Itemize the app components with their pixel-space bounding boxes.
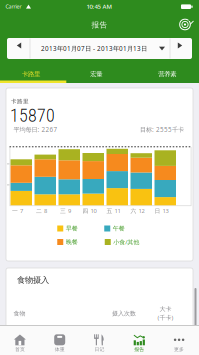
- staticText: 体重: [55, 346, 65, 352]
- staticText: 卡路里: [22, 70, 40, 78]
- staticText: 宏量: [90, 70, 102, 78]
- staticText: 六 12: [130, 207, 144, 215]
- staticText: 卡路里: [11, 98, 29, 105]
- button[interactable]: 报告: [119, 325, 159, 355]
- button[interactable]: 体重: [40, 325, 80, 355]
- staticText: 早餐: [66, 225, 78, 232]
- staticText: 二 8: [36, 207, 47, 215]
- staticText: 15870: [10, 105, 55, 126]
- staticText: 更多: [174, 346, 184, 352]
- staticText: 10:45 AM: [86, 2, 112, 11]
- staticText: 四 10: [82, 207, 96, 215]
- staticText: 日 13: [154, 207, 168, 215]
- staticText: 日记: [94, 346, 104, 352]
- staticText: Carrier: [5, 3, 21, 10]
- staticText: 报告: [134, 346, 144, 352]
- button[interactable]: 营养素: [133, 61, 199, 83]
- staticText: 目标: 2555千卡: [140, 125, 184, 134]
- staticText: 摄入次数: [112, 310, 136, 317]
- staticText: 一 7: [12, 207, 23, 215]
- button[interactable]: 上一周: [7, 38, 30, 59]
- button[interactable]: 下一周: [170, 38, 192, 59]
- button[interactable]: 更多: [159, 325, 199, 355]
- button[interactable]: 卡路里: [0, 61, 66, 83]
- staticText: 2013年01月07日 - 2013年01月13日: [41, 44, 147, 53]
- staticText: 平均每日: 2267: [13, 125, 57, 134]
- staticText: 首页: [15, 346, 25, 352]
- staticText: 小食/其他: [113, 238, 139, 246]
- staticText: (千卡): [157, 313, 173, 322]
- staticText: 报告: [91, 20, 107, 30]
- button[interactable]: 2013年01月07日 - 2013年01月13日: [30, 38, 169, 59]
- button[interactable]: 日记: [80, 325, 119, 355]
- staticText: 大卡: [159, 305, 171, 313]
- button[interactable]: 首页: [0, 325, 40, 355]
- staticText: 午餐: [113, 225, 125, 232]
- staticText: 营养素: [158, 70, 176, 78]
- button[interactable]: 目标: [177, 17, 192, 32]
- staticText: 晚餐: [66, 238, 78, 246]
- staticText: 三 9: [60, 207, 71, 215]
- staticText: 食物: [13, 310, 25, 317]
- staticText: 五 11: [106, 207, 120, 215]
- button[interactable]: 宏量: [66, 61, 133, 83]
- staticText: 食物摄入: [17, 275, 49, 285]
